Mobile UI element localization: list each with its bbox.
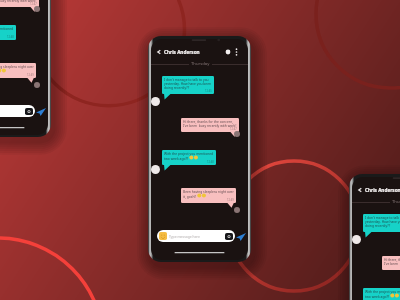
button[interactable]: With the project you mentioned (0, 25, 16, 40)
button[interactable]: Contact avatar (34, 82, 40, 88)
staticText: 12:49 (27, 73, 34, 77)
staticText: 12:47 (30, 2, 37, 6)
staticText: Been having sleepless night over (0, 64, 34, 68)
button[interactable]: Chris Anderson (156, 46, 200, 58)
staticText: 12:47 (230, 127, 237, 131)
button[interactable]: Camera (25, 108, 33, 115)
button[interactable]: Contact avatar (151, 165, 160, 174)
button[interactable]: Contact avatar (34, 6, 40, 12)
staticText: I've been busy recently with work! (0, 0, 37, 2)
button[interactable]: I don't manage to talk to you (363, 214, 400, 232)
staticText: Hi there, thanks for the concern, (183, 119, 234, 123)
button[interactable]: Chris Anderson (357, 184, 400, 196)
staticText: I don't manage to talk to you (365, 215, 400, 219)
staticText: With the project you mentioned (164, 151, 214, 155)
staticText: Type message here (169, 234, 200, 239)
staticText: doing recently?? (164, 85, 190, 89)
staticText: Chris Anderson (164, 49, 200, 55)
button[interactable]: Contact avatar (234, 207, 240, 213)
staticText: Been having sleepless night over (183, 189, 234, 193)
button[interactable]: Contact avatar (151, 97, 160, 106)
button[interactable]: I don't manage to talk to you (162, 76, 214, 94)
staticText: two week ago?? (365, 294, 390, 298)
staticText: I've been busy recently with work! (384, 261, 400, 265)
staticText: With the project you mentioned (0, 26, 14, 30)
button[interactable]: Type message here (0, 105, 35, 117)
button[interactable]: Video call (222, 46, 234, 58)
staticText: Hi there, thanks for the concern, (384, 257, 400, 261)
staticText: 12:49 (227, 198, 234, 202)
button[interactable]: Send (35, 104, 46, 118)
button[interactable]: With the project you mentioned (162, 150, 216, 165)
button[interactable]: Send (235, 229, 246, 243)
staticText: 12:45 (205, 89, 212, 93)
button[interactable]: Hi there, thanks for the concern, (0, 0, 39, 7)
button[interactable]: Hi there, thanks for the concern, (382, 256, 400, 270)
button[interactable]: Hi there, thanks for the concern, (181, 118, 239, 132)
staticText: I've been busy recently with work! (183, 123, 237, 127)
button[interactable]: Type message here (157, 230, 235, 242)
button[interactable]: Camera (225, 233, 233, 240)
button[interactable]: Contact avatar (234, 131, 240, 137)
staticText: Thursday (392, 199, 400, 205)
button[interactable]: More options (231, 46, 242, 58)
staticText: 12:48 (207, 160, 214, 164)
staticText: With the project you mentioned (365, 289, 400, 293)
button[interactable]: Been having sleepless night over (0, 63, 36, 78)
staticText: it, gosh!! (183, 194, 197, 198)
staticText: I don't manage to talk to you (164, 77, 209, 81)
staticText: yesterday. How have you been (164, 81, 212, 85)
staticText: doing recently?? (365, 223, 391, 227)
button[interactable]: Been having sleepless night over (181, 188, 236, 203)
staticText: yesterday. How have you been (365, 219, 400, 223)
button[interactable]: Contact avatar (352, 235, 361, 244)
staticText: two week ago?? (164, 156, 189, 160)
button[interactable]: With the project you mentioned (363, 288, 400, 300)
staticText: Thursday (191, 61, 210, 67)
staticText: Chris Anderson (365, 187, 400, 193)
staticText: 12:48 (7, 35, 14, 39)
